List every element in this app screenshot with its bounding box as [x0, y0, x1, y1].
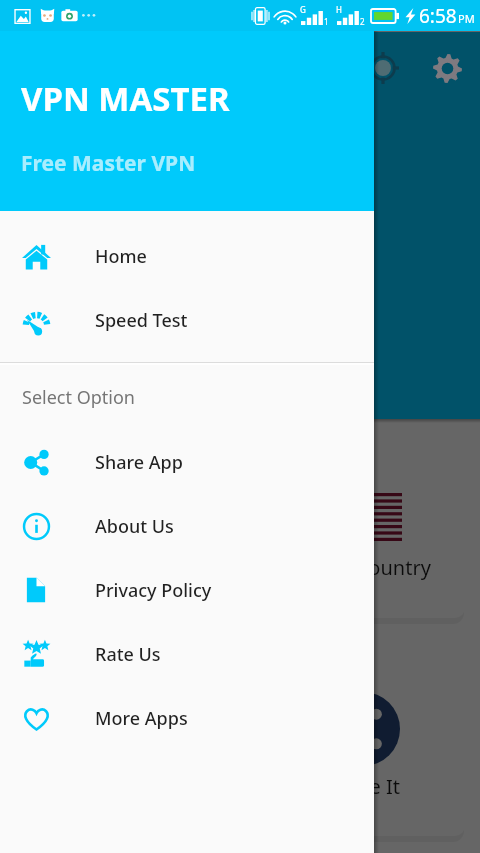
button[interactable]: About Us: [0, 494, 374, 558]
button[interactable]: Select Country: [261, 432, 465, 618]
button[interactable]: Home: [0, 224, 374, 288]
staticText: Select Option: [22, 385, 135, 410]
staticText: H: [336, 4, 342, 15]
staticText: PM: [458, 11, 475, 26]
button[interactable]: Speed Test: [0, 288, 374, 352]
staticText: Free Master VPN: [21, 149, 196, 178]
button[interactable]: Share It: [261, 654, 465, 836]
button[interactable]: Share App: [0, 430, 374, 494]
staticText: 1: [324, 16, 329, 27]
button[interactable]: More Apps: [0, 686, 374, 750]
staticText: G: [300, 4, 306, 15]
staticText: 6:58: [419, 3, 457, 29]
staticText: Privacy Policy: [95, 578, 212, 603]
staticText: Share App: [95, 450, 183, 475]
button[interactable]: Rate Us: [0, 622, 374, 686]
staticText: Share It: [327, 773, 400, 800]
staticText: Rate Us: [95, 642, 161, 667]
staticText: About Us: [95, 514, 174, 539]
button[interactable]: Settings: [423, 44, 471, 92]
staticText: VPN MASTER: [21, 76, 230, 121]
staticText: More Apps: [95, 706, 188, 731]
staticText: Home: [95, 244, 147, 269]
button[interactable]: Select Country: [27, 432, 231, 618]
staticText: Speed Test: [95, 308, 188, 333]
button[interactable]: Connection status: [359, 44, 407, 92]
button[interactable]: Privacy Policy: [0, 558, 374, 622]
staticText: Select Country: [295, 554, 431, 581]
staticText: 2: [360, 16, 365, 27]
button[interactable]: Share It: [27, 654, 231, 836]
